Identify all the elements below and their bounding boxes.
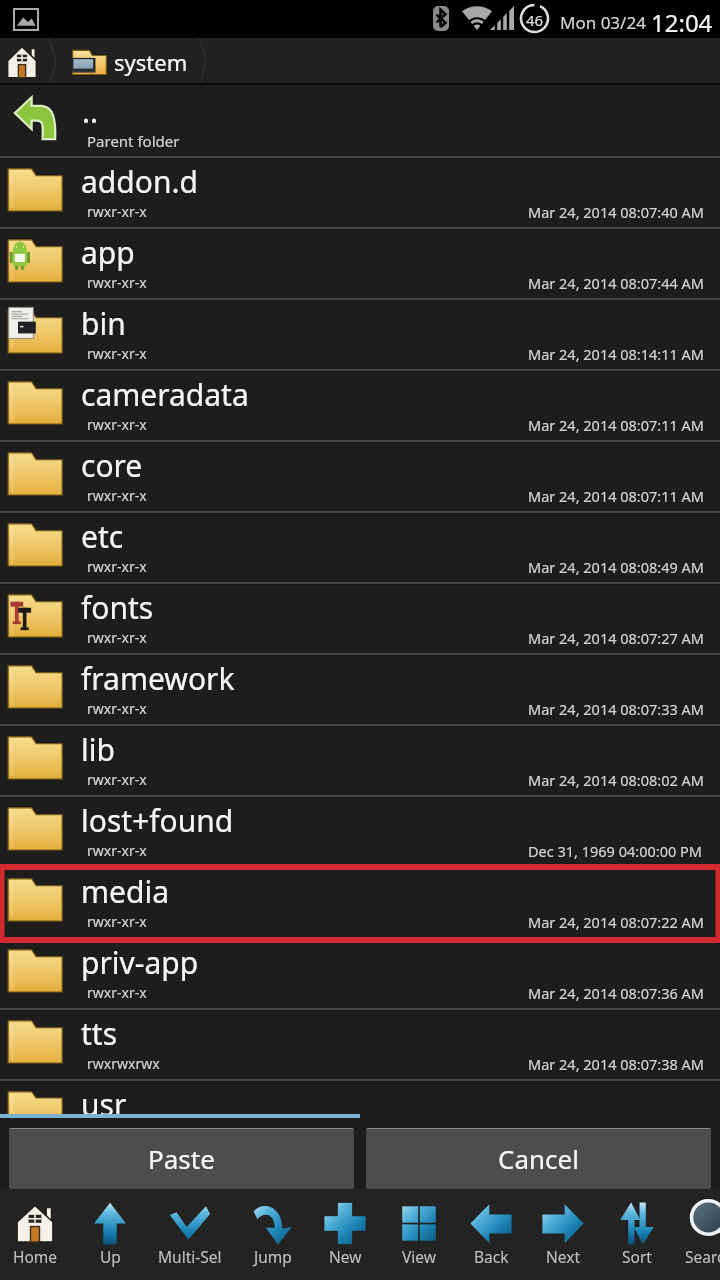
- button[interactable]: Search: [673, 1189, 720, 1280]
- staticText: rwxr-xr-x: [87, 912, 147, 931]
- staticText: Mar 24, 2014 08:07:38 AM: [528, 1125, 704, 1145]
- button[interactable]: Cancel: [366, 1128, 711, 1189]
- staticText: Mar 24, 2014 08:07:27 AM: [528, 628, 704, 648]
- staticText: Mar 24, 2014 08:08:49 AM: [528, 557, 704, 577]
- staticText: Search: [685, 1246, 720, 1267]
- staticText: rwxr-xr-x: [87, 628, 147, 647]
- staticText: priv-app: [81, 942, 199, 983]
- staticText: Back: [474, 1246, 509, 1267]
- staticText: Sort: [622, 1246, 652, 1267]
- button[interactable]: Up: [73, 1189, 147, 1280]
- staticText: media: [81, 871, 169, 912]
- staticText: 46: [526, 10, 544, 30]
- button[interactable]: Back: [454, 1189, 528, 1280]
- staticText: rwxr-xr-x: [87, 273, 147, 292]
- staticText: Jump: [254, 1246, 292, 1267]
- staticText: 12:04: [651, 6, 713, 39]
- staticText: rwxr-xr-x: [87, 486, 147, 505]
- staticText: core: [81, 445, 143, 486]
- staticText: app: [81, 232, 135, 273]
- staticText: Paste: [148, 1141, 215, 1176]
- staticText: bin: [81, 303, 126, 344]
- staticText: rwxr-xr-x: [87, 770, 147, 789]
- staticText: Mar 24, 2014 08:08:02 AM: [528, 770, 704, 790]
- button[interactable]: lib: [0, 724, 720, 795]
- staticText: usr: [81, 1084, 127, 1123]
- button[interactable]: fonts: [0, 582, 720, 653]
- button[interactable]: ..: [0, 85, 720, 156]
- staticText: rwxr-xr-x: [87, 983, 147, 1002]
- button[interactable]: cameradata: [0, 369, 720, 440]
- button[interactable]: tts: [0, 1008, 720, 1079]
- staticText: rwxr-xr-x: [87, 344, 147, 363]
- button[interactable]: bin: [0, 298, 720, 369]
- button[interactable]: Home: [0, 1189, 72, 1280]
- staticText: rwxr-xr-x: [87, 841, 147, 860]
- staticText: rwxr-xr-x: [87, 699, 147, 718]
- button[interactable]: etc: [0, 511, 720, 582]
- staticText: ..: [82, 91, 99, 132]
- button[interactable]: media: [0, 866, 720, 937]
- button[interactable]: framework: [0, 653, 720, 724]
- staticText: rwxr-xr-x: [87, 1125, 147, 1144]
- staticText: Mar 24, 2014 08:14:11 AM: [528, 344, 704, 364]
- staticText: system: [114, 47, 188, 77]
- staticText: lib: [81, 729, 115, 770]
- button[interactable]: lost+found: [0, 795, 720, 866]
- button[interactable]: Next: [526, 1189, 600, 1280]
- staticText: addon.d: [81, 161, 198, 202]
- button[interactable]: priv-app: [0, 937, 720, 1008]
- staticText: rwxr-xr-x: [87, 415, 147, 434]
- staticText: rwxrwxrwx: [87, 1054, 160, 1073]
- staticText: Mar 24, 2014 08:07:11 AM: [528, 486, 704, 506]
- staticText: New: [329, 1246, 362, 1267]
- staticText: fonts: [81, 587, 154, 628]
- button[interactable]: Paste: [9, 1128, 354, 1189]
- button[interactable]: Jump: [236, 1189, 310, 1280]
- staticText: lost+found: [81, 800, 234, 841]
- staticText: rwxr-xr-x: [87, 557, 147, 576]
- button[interactable]: New: [308, 1189, 382, 1280]
- button[interactable]: Home folder: [0, 38, 50, 85]
- staticText: Mar 24, 2014 08:07:40 AM: [528, 202, 704, 222]
- button[interactable]: system: [72, 38, 199, 85]
- staticText: cameradata: [81, 374, 249, 415]
- staticText: Multi-Sel: [158, 1246, 222, 1267]
- staticText: tts: [81, 1013, 118, 1054]
- staticText: Mon 03/24: [560, 11, 646, 34]
- staticText: rwxr-xr-x: [87, 202, 147, 221]
- staticText: etc: [81, 516, 124, 557]
- button[interactable]: usr: [0, 1079, 720, 1118]
- staticText: Cancel: [498, 1141, 579, 1176]
- button[interactable]: addon.d: [0, 156, 720, 227]
- staticText: Dec 31, 1969 04:00:00 PM: [528, 841, 702, 861]
- staticText: Up: [100, 1246, 121, 1267]
- button[interactable]: app: [0, 227, 720, 298]
- staticText: Mar 24, 2014 08:07:38 AM: [528, 1054, 704, 1074]
- staticText: Mar 24, 2014 08:07:22 AM: [528, 912, 704, 932]
- button[interactable]: Sort: [600, 1189, 674, 1280]
- staticText: Mar 24, 2014 08:07:33 AM: [528, 699, 704, 719]
- staticText: Next: [546, 1246, 581, 1267]
- staticText: View: [402, 1246, 436, 1267]
- staticText: Home: [13, 1246, 58, 1267]
- staticText: Mar 24, 2014 08:07:36 AM: [528, 983, 704, 1003]
- button[interactable]: Multi-Sel: [153, 1189, 227, 1280]
- staticText: Mar 24, 2014 08:07:44 AM: [528, 273, 704, 293]
- staticText: Mar 24, 2014 08:07:11 AM: [528, 415, 704, 435]
- button[interactable]: View: [382, 1189, 456, 1280]
- button[interactable]: core: [0, 440, 720, 511]
- staticText: Parent folder: [87, 131, 180, 151]
- staticText: framework: [81, 658, 235, 699]
